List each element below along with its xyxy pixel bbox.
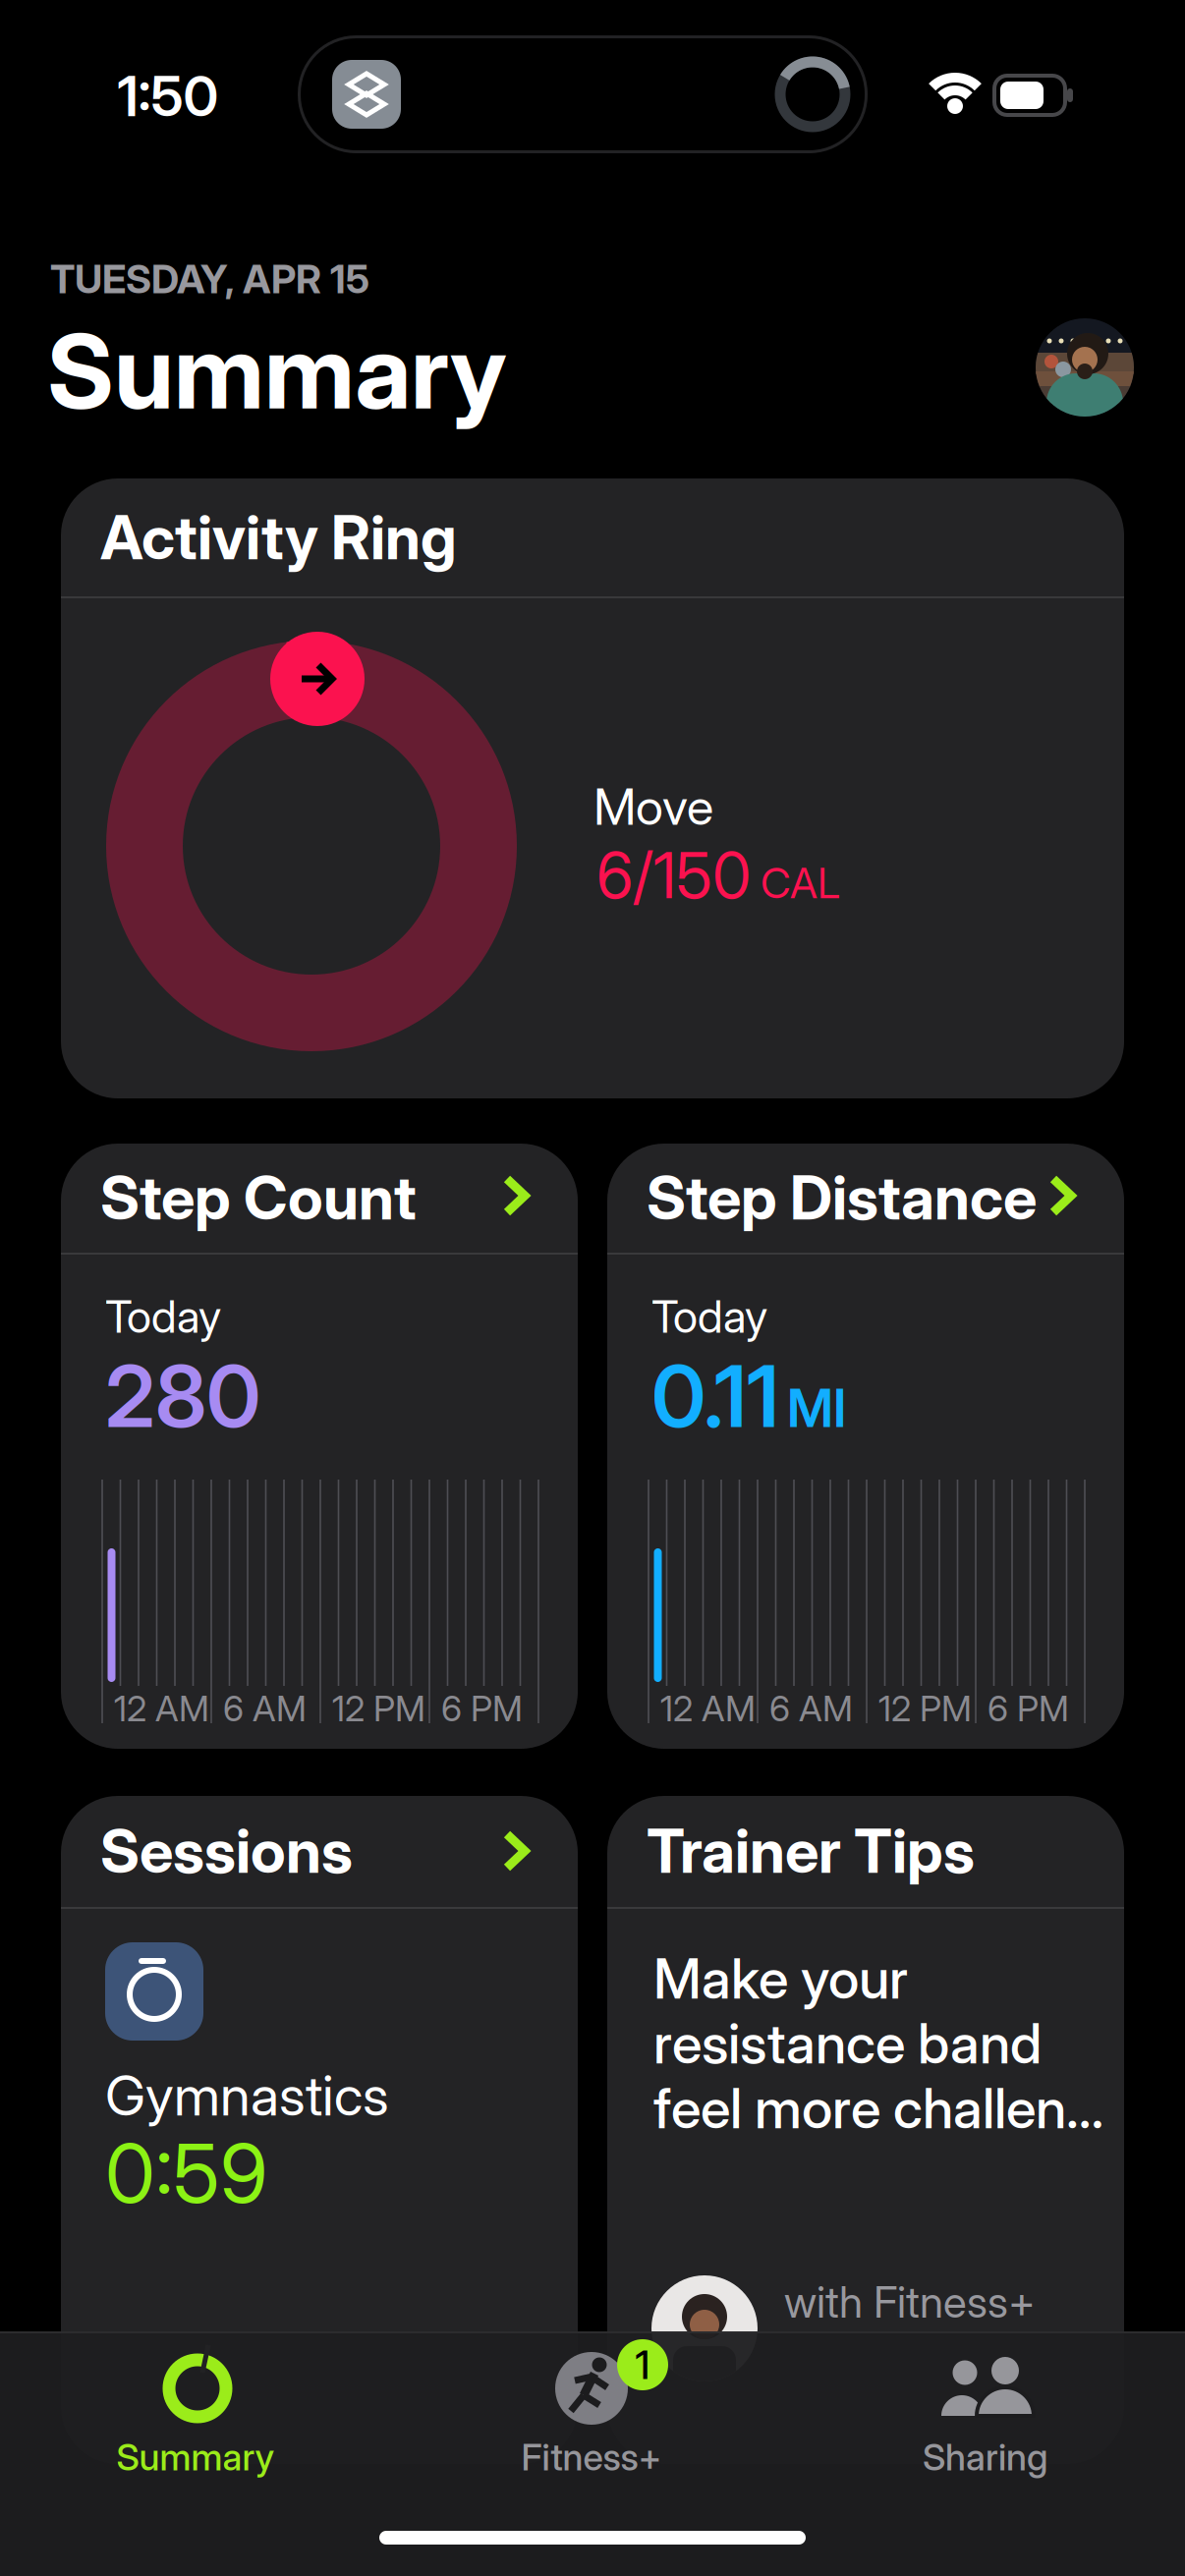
staticText: 6 PM: [987, 1688, 1069, 1729]
staticText: resistance band: [653, 2011, 1042, 2076]
button[interactable]: Profile: [1036, 318, 1134, 417]
staticText: 6/150: [596, 838, 751, 912]
staticText: 1: [635, 2342, 650, 2388]
staticText: Sessions: [100, 1815, 353, 1887]
staticText: 12 PM: [332, 1688, 425, 1729]
staticText: Step Distance: [647, 1162, 1037, 1233]
staticText: Today: [651, 1290, 767, 1343]
button[interactable]: Trainer Tips: [607, 1796, 1124, 2464]
button[interactable]: Summary: [30, 2332, 365, 2495]
staticText: Summary: [116, 2436, 275, 2479]
staticText: CAL: [761, 858, 840, 908]
button[interactable]: Activity Ring: [61, 478, 1124, 1098]
staticText: 6 AM: [769, 1688, 853, 1729]
staticText: Gymnastics: [105, 2063, 389, 2128]
staticText: 280: [105, 1346, 260, 1446]
button[interactable]: Step Count: [61, 1144, 578, 1749]
staticText: Summary: [47, 311, 507, 432]
button[interactable]: 1: [425, 2332, 760, 2495]
staticText: TUESDAY, APR 15: [50, 256, 369, 302]
staticText: 12 AM: [660, 1688, 756, 1729]
staticText: Move: [593, 777, 713, 836]
staticText: MI: [787, 1377, 846, 1439]
staticText: 6 AM: [223, 1688, 307, 1729]
staticText: 6 PM: [441, 1688, 523, 1729]
staticText: with Fitness+: [784, 2276, 1036, 2327]
staticText: 12 AM: [114, 1688, 209, 1729]
staticText: Sharing: [923, 2436, 1048, 2479]
staticText: 12 PM: [878, 1688, 972, 1729]
staticText: Today: [105, 1290, 221, 1343]
staticText: Make your: [653, 1946, 908, 2011]
staticText: 0:59: [105, 2125, 267, 2221]
staticText: feel more challen…: [653, 2076, 1103, 2141]
staticText: Step Count: [100, 1162, 417, 1233]
staticText: Trainer Tips: [647, 1815, 975, 1887]
staticText: Activity Ring: [100, 502, 457, 573]
staticText: 0.11: [651, 1346, 779, 1446]
staticText: Fitness+: [521, 2436, 662, 2479]
staticText: 1:50: [117, 64, 219, 129]
button[interactable]: Step Distance: [607, 1144, 1124, 1749]
button[interactable]: Sessions: [61, 1796, 578, 2464]
button[interactable]: Sharing: [818, 2332, 1153, 2495]
